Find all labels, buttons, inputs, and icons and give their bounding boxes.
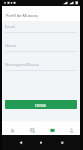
- button[interactable]: Mensagem/Musica: [5, 61, 77, 80]
- staticText: ENVIAR: [35, 104, 47, 108]
- staticText: Perfil de Musicos: [6, 13, 38, 18]
- staticText: Nome: [5, 43, 16, 48]
- button[interactable]: Profile: [62, 121, 80, 135]
- button[interactable]: Email: [5, 23, 77, 42]
- staticText: Mensagem/Musica: [5, 62, 39, 67]
- button[interactable]: Nome: [5, 42, 77, 61]
- button[interactable]: Search: [22, 121, 42, 135]
- button[interactable]: ENVIAR: [5, 100, 77, 109]
- staticText: Email: [5, 24, 15, 29]
- button[interactable]: Home: [2, 121, 22, 135]
- button[interactable]: Messages: [42, 121, 62, 135]
